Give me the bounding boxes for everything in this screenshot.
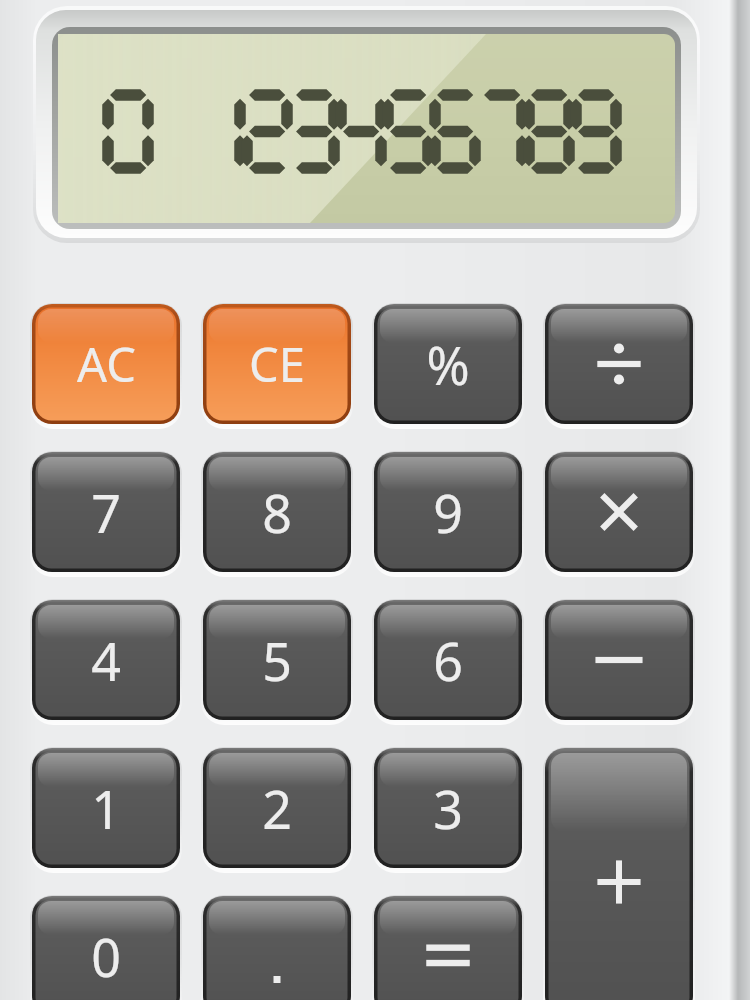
button[interactable]: 8 [203, 452, 351, 572]
button[interactable]: CE [203, 304, 351, 424]
button[interactable]: Subtract [545, 600, 693, 720]
staticText: 6 [433, 625, 463, 696]
button[interactable]: 5 [203, 600, 351, 720]
staticText: 1 [91, 773, 121, 844]
button[interactable]: Equals [374, 896, 522, 1000]
staticText: 4 [91, 625, 121, 696]
button[interactable]: 7 [32, 452, 180, 572]
staticText: 2 [262, 773, 292, 844]
button[interactable]: AC [32, 304, 180, 424]
button[interactable]: 2 [203, 748, 351, 868]
button[interactable]: Multiply [545, 452, 693, 572]
staticText: % [426, 329, 470, 400]
button[interactable]: 6 [374, 600, 522, 720]
button[interactable]: Decimal point [203, 896, 351, 1000]
button[interactable]: % [374, 304, 522, 424]
staticText: AC [77, 332, 136, 396]
staticText: 8 [262, 477, 292, 548]
button[interactable]: 0 [32, 896, 180, 1000]
button[interactable]: 9 [374, 452, 522, 572]
button[interactable]: 1 [32, 748, 180, 868]
button[interactable]: Add [545, 748, 693, 1000]
button[interactable]: 3 [374, 748, 522, 868]
staticText: 0 [91, 921, 121, 992]
staticText: 3 [433, 773, 463, 844]
staticText: 9 [433, 477, 463, 548]
staticText: CE [249, 332, 305, 396]
staticText: 7 [91, 477, 121, 548]
staticText: 5 [262, 625, 292, 696]
button[interactable]: Divide [545, 304, 693, 424]
button[interactable]: 4 [32, 600, 180, 720]
